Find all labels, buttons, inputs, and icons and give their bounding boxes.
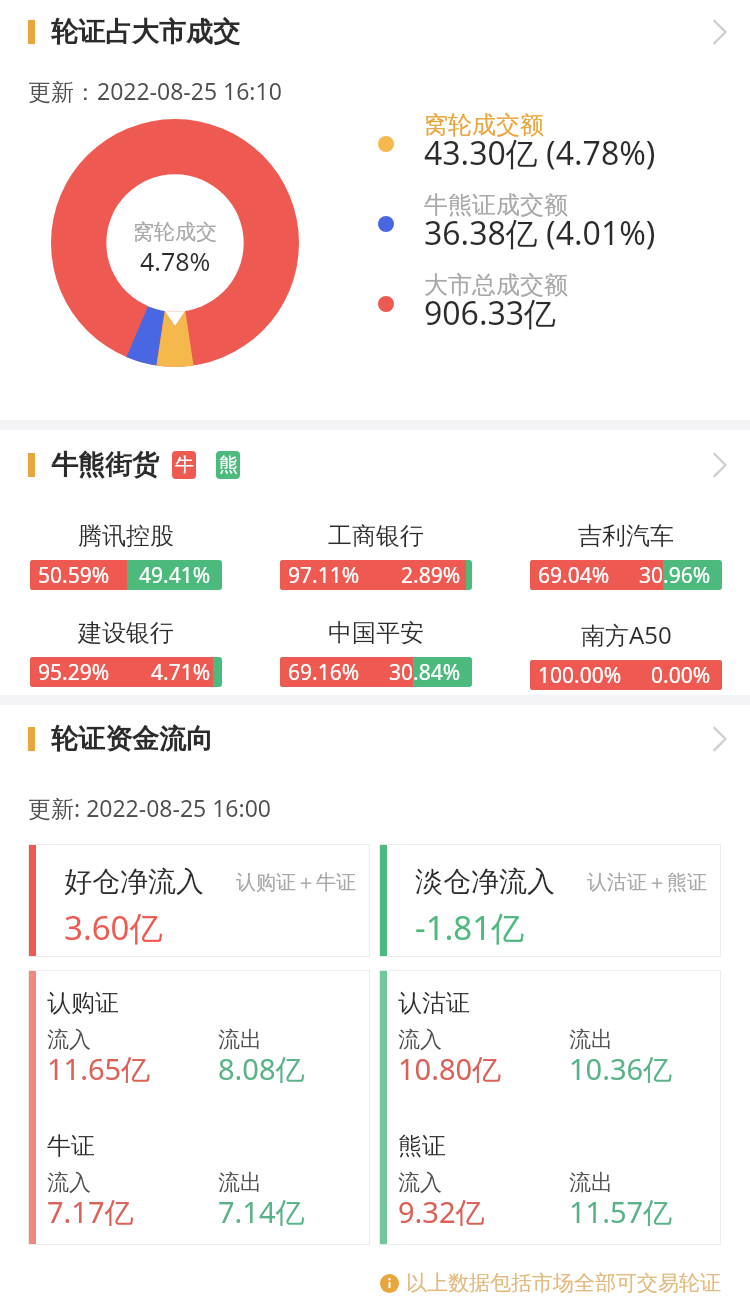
staticText: 69.16% [288, 658, 360, 687]
staticText: 100.00% [538, 661, 622, 690]
staticText: 流入 [398, 1169, 442, 1197]
staticText: 流出 [569, 1169, 613, 1197]
staticText: 0.00% [651, 661, 711, 690]
staticText: 30.84% [389, 658, 461, 687]
staticText: 7.14亿 [218, 1192, 305, 1226]
staticText: 95.29% [38, 658, 110, 687]
button[interactable]: 建设银行 [30, 618, 222, 687]
staticText: 7.17亿 [47, 1192, 134, 1226]
staticText: 窝轮成交 [133, 219, 217, 245]
staticText: 流出 [218, 1026, 262, 1054]
button[interactable]: 腾讯控股 [30, 521, 222, 590]
staticText: 36.38亿 (4.01%) [424, 211, 656, 255]
button[interactable]: 牛 [172, 451, 196, 479]
staticText: 49.41% [139, 561, 211, 590]
button[interactable]: 淡仓净流入 [379, 844, 721, 957]
staticText: 流入 [398, 1026, 442, 1054]
button[interactable]: 牛熊证成交额 [378, 190, 656, 264]
staticText: 牛熊证成交额 [424, 190, 568, 220]
staticText: 11.65亿 [47, 1049, 151, 1083]
staticText: 更新：2022-08-25 16:10 [28, 75, 282, 106]
staticText: 10.80亿 [398, 1049, 502, 1083]
staticText: 淡仓净流入 [415, 864, 555, 899]
button[interactable]: 好仓净流入 [28, 844, 370, 957]
staticText: 腾讯控股 [78, 521, 174, 551]
other: More [708, 724, 738, 754]
staticText: 熊证 [398, 1131, 446, 1161]
staticText: 流入 [47, 1169, 91, 1197]
staticText: 好仓净流入 [64, 864, 204, 899]
button[interactable]: 吉利汽车 [530, 521, 722, 590]
button[interactable]: 认购证 [28, 970, 370, 1245]
staticText: 轮证资金流向 [51, 722, 213, 756]
staticText: 906.33亿 [424, 291, 557, 335]
staticText: 牛熊街货 [51, 448, 159, 482]
button[interactable]: 工商银行 [280, 521, 472, 590]
staticText: 认购证 [47, 988, 119, 1018]
button[interactable]: 轮证占大市成交 [0, 10, 750, 54]
staticText: 4.78% [140, 244, 211, 278]
staticText: 熊 [219, 453, 238, 477]
button[interactable]: 牛熊街货 [0, 443, 750, 487]
staticText: 认沽证＋熊证 [587, 870, 707, 895]
staticText: 9.32亿 [398, 1192, 485, 1226]
staticText: 牛 [175, 453, 194, 477]
staticText: 30.96% [639, 561, 711, 590]
staticText: 南方A50 [581, 618, 672, 651]
button[interactable]: 以上数据包括市场全部可交易轮证 [380, 1270, 721, 1296]
staticText: 流出 [218, 1169, 262, 1197]
staticText: 69.04% [538, 561, 610, 590]
staticText: 轮证占大市成交 [51, 15, 240, 49]
staticText: 3.60亿 [64, 905, 163, 950]
staticText: 认沽证 [398, 988, 470, 1018]
staticText: 97.11% [288, 561, 360, 590]
staticText: 吉利汽车 [578, 521, 674, 551]
staticText: 中国平安 [328, 618, 424, 648]
staticText: 2.89% [401, 561, 461, 590]
other: More [708, 450, 738, 480]
staticText: 更新: 2022-08-25 16:00 [28, 792, 271, 823]
button[interactable]: 中国平安 [280, 618, 472, 687]
staticText: 认购证＋牛证 [236, 870, 356, 895]
staticText: 43.30亿 (4.78%) [424, 131, 656, 175]
staticText: 窝轮成交额 [424, 110, 544, 140]
button[interactable]: 轮证资金流向 [0, 717, 750, 761]
staticText: 流出 [569, 1026, 613, 1054]
staticText: 以上数据包括市场全部可交易轮证 [406, 1270, 721, 1296]
staticText: 8.08亿 [218, 1049, 305, 1083]
button[interactable]: 认沽证 [379, 970, 721, 1245]
staticText: 50.59% [38, 561, 110, 590]
other: More [708, 17, 738, 47]
staticText: 工商银行 [328, 521, 424, 551]
staticText: 4.71% [151, 658, 211, 687]
button[interactable]: 窝轮成交额 [378, 110, 656, 184]
staticText: 11.57亿 [569, 1192, 673, 1226]
button[interactable]: 南方A50 [530, 618, 722, 690]
staticText: -1.81亿 [415, 905, 525, 950]
button[interactable]: 熊 [216, 451, 240, 479]
staticText: 10.36亿 [569, 1049, 673, 1083]
button[interactable]: 大市总成交额 [378, 270, 568, 344]
staticText: 流入 [47, 1026, 91, 1054]
staticText: 牛证 [47, 1131, 95, 1161]
staticText: 大市总成交额 [424, 270, 568, 300]
staticText: 建设银行 [78, 618, 174, 648]
